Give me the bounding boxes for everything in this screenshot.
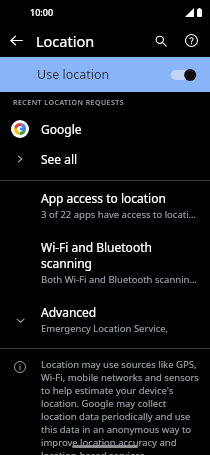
staticText: Emergency Location Service, Google Locat… [41,322,202,335]
button[interactable]: App access to location [0,181,210,230]
button[interactable]: Back [0,24,33,57]
staticText: Both Wi-Fi and Bluetooth scanning are on [41,273,198,286]
button[interactable]: Use location [0,57,210,92]
button[interactable]: Advanced [0,295,210,344]
button[interactable]: Wi-Fi and Bluetooth scanning [0,230,210,295]
staticText: Location may use sources like GPS, Wi-Fi… [41,358,200,455]
staticText: RECENT LOCATION REQUESTS [13,98,125,108]
staticText: Advanced [41,304,97,320]
staticText: Use location [37,66,110,83]
staticText: 3 of 22 apps have access to location [41,208,198,221]
staticText: Wi-Fi and Bluetooth scanning [41,239,198,271]
staticText: See all [41,151,78,167]
button[interactable]: Google [0,114,210,144]
button[interactable]: Search [144,24,177,57]
button[interactable]: See all [0,144,210,174]
staticText: Location [36,31,95,51]
staticText: Google [41,121,82,137]
staticText: App access to location [41,190,166,206]
staticText: 10:00 [30,6,54,18]
button[interactable]: Help [177,24,206,57]
